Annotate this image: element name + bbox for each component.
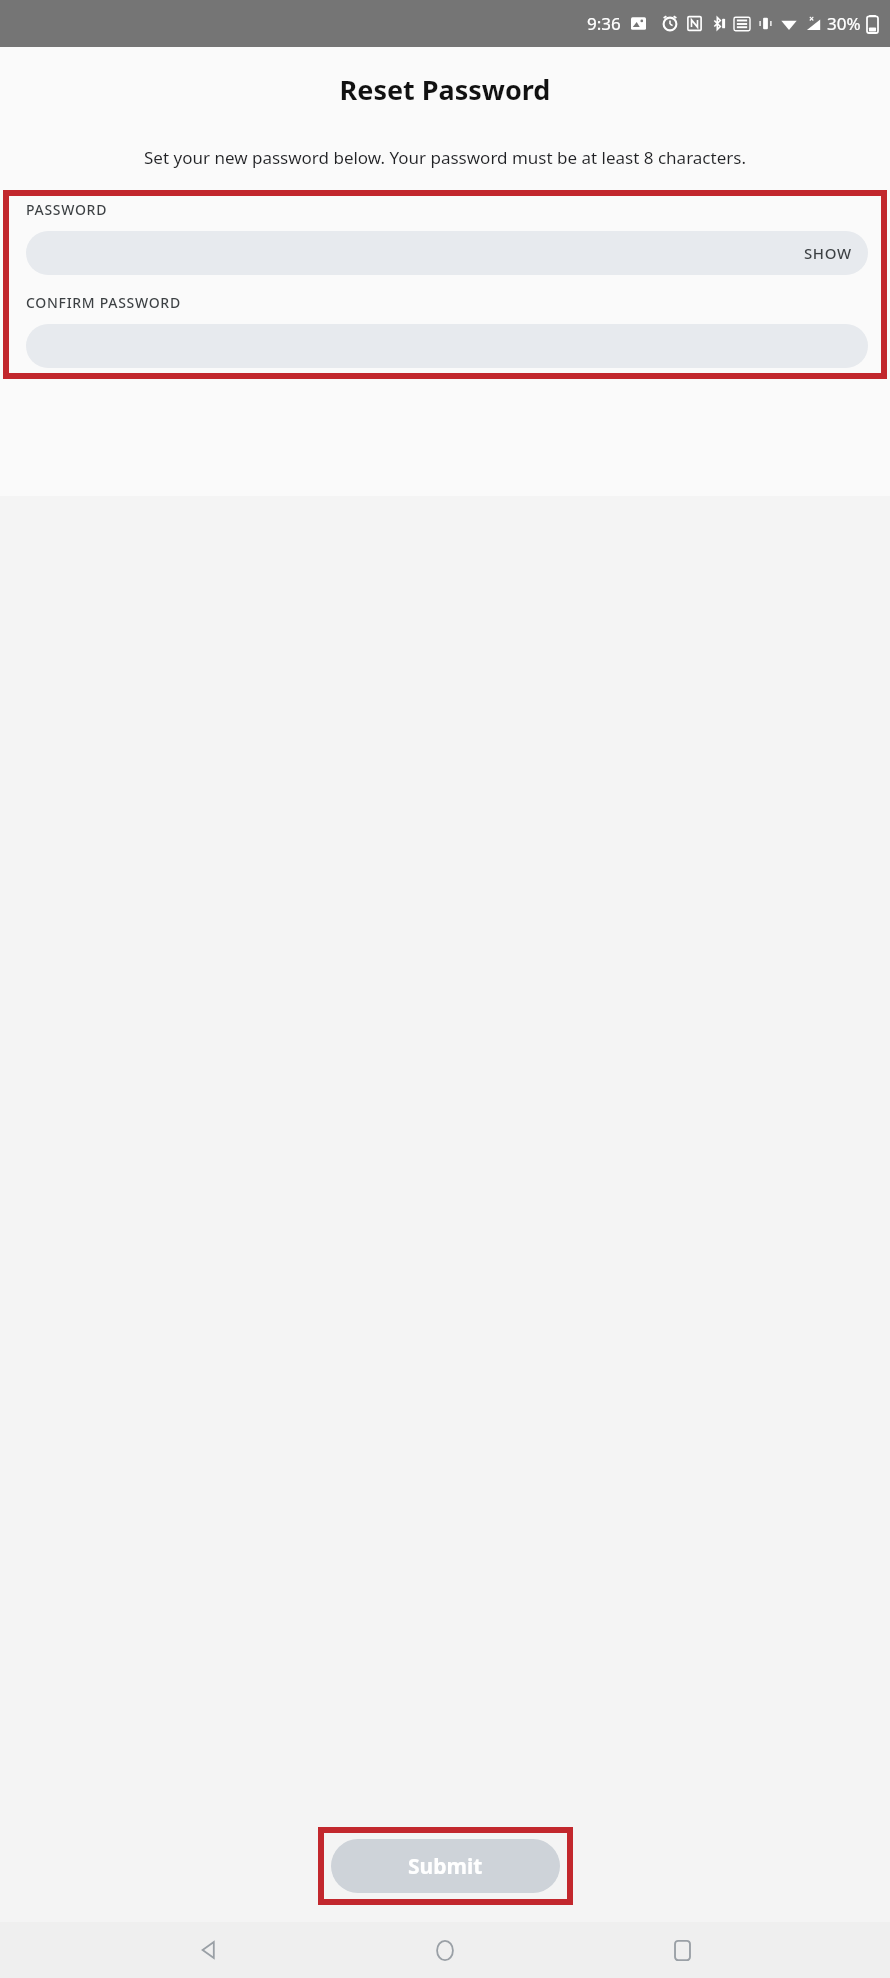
- staticText: SHOW: [804, 243, 852, 263]
- staticText: 9:36: [587, 12, 621, 35]
- button[interactable]: SHOW: [804, 243, 852, 263]
- button[interactable]: SHOW: [26, 231, 868, 275]
- staticText: PASSWORD: [26, 200, 108, 219]
- staticText: Submit: [408, 1852, 483, 1881]
- button[interactable]: Submit: [331, 1839, 560, 1893]
- staticText: Set your new password below. Your passwo…: [22, 146, 868, 169]
- staticText: CONFIRM PASSWORD: [26, 293, 181, 312]
- staticText: 30%: [827, 12, 861, 35]
- button[interactable]: Recent apps: [654, 1922, 710, 1978]
- button[interactable]: Back: [181, 1922, 237, 1978]
- staticText: Reset Password: [0, 71, 890, 108]
- button[interactable]: Home: [417, 1922, 473, 1978]
